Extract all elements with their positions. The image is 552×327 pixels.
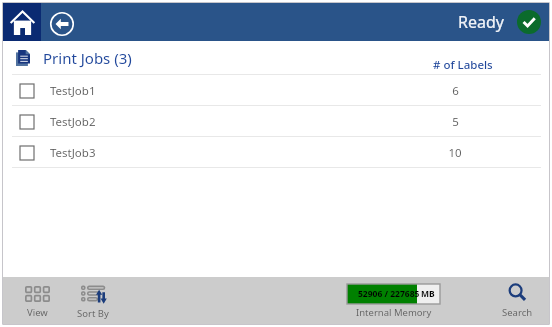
button[interactable]: View xyxy=(14,279,60,326)
staticText: TestJob1 xyxy=(50,83,96,99)
staticText: # of Labels xyxy=(433,57,493,73)
staticText: TestJob3 xyxy=(50,145,96,161)
staticText: MB xyxy=(421,288,435,300)
staticText: Print Jobs (3) xyxy=(43,48,132,68)
button[interactable]: Sort By xyxy=(70,279,116,326)
button[interactable]: Search xyxy=(494,278,540,325)
button[interactable]: TestJob1 xyxy=(3,75,549,106)
button[interactable]: Ready xyxy=(458,10,541,34)
staticText: TestJob2 xyxy=(50,114,96,130)
staticText: Ready xyxy=(458,11,504,33)
staticText: View xyxy=(27,306,48,319)
button[interactable]: Home xyxy=(3,3,41,41)
staticText: 5 xyxy=(452,114,459,130)
button[interactable]: Back xyxy=(41,3,79,41)
staticText: 10 xyxy=(448,145,462,161)
staticText: 6 xyxy=(452,83,459,99)
button[interactable]: TestJob2 xyxy=(3,106,549,137)
staticText: Sort By xyxy=(77,307,109,320)
button[interactable]: TestJob3 xyxy=(3,137,549,168)
staticText: Internal Memory xyxy=(356,306,432,319)
staticText: Search xyxy=(502,306,533,319)
staticText: 52906 / 227685 xyxy=(358,288,420,300)
